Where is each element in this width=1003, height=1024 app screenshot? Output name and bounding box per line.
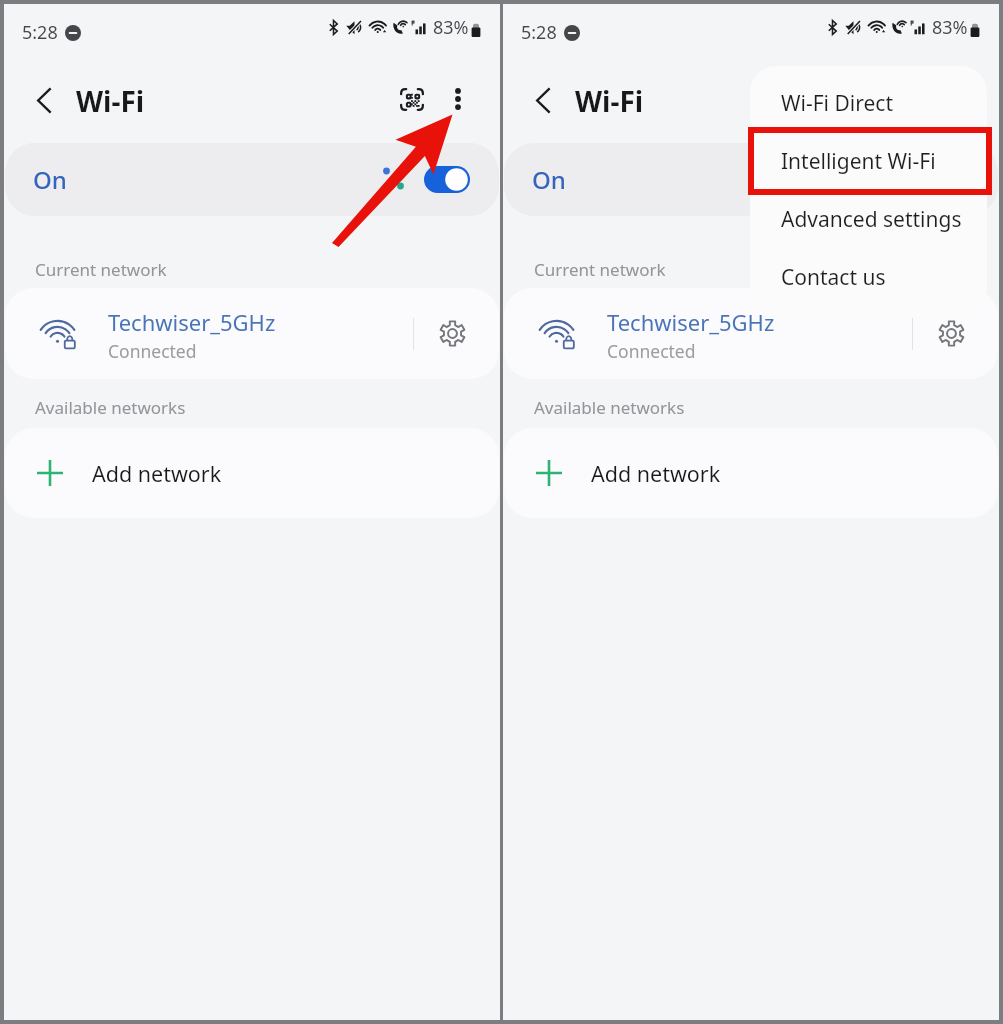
staticText: Add network: [591, 459, 721, 488]
staticText: Techwiser_5GHz: [607, 307, 775, 337]
button[interactable]: Contact us: [750, 248, 987, 306]
staticText: Advanced settings: [781, 205, 962, 234]
staticText: Available networks: [35, 396, 186, 419]
staticText: 5:28: [22, 20, 58, 45]
button[interactable]: Scan QR code: [388, 75, 436, 123]
staticText: 83%: [932, 15, 968, 40]
staticText: On: [33, 163, 67, 196]
staticText: Wi-Fi Direct: [781, 89, 893, 118]
staticText: Techwiser_5GHz: [108, 307, 276, 337]
button[interactable]: Scan QR code: [887, 75, 935, 123]
button[interactable]: More options: [434, 75, 482, 123]
button[interactable]: Add network: [5, 428, 499, 518]
staticText: Connected: [108, 339, 197, 363]
staticText: Available networks: [534, 396, 685, 419]
button[interactable]: Network settings: [904, 288, 998, 379]
button[interactable]: Intelligent Wi-Fi: [750, 132, 987, 190]
button[interactable]: Techwiser_5GHz: [504, 288, 904, 379]
button[interactable]: Wi-Fi Direct: [750, 74, 987, 132]
button[interactable]: Techwiser_5GHz: [5, 288, 405, 379]
staticText: Wi-Fi: [76, 82, 145, 120]
staticText: Connected: [607, 339, 696, 363]
staticText: Wi-Fi: [575, 82, 644, 120]
staticText: Contact us: [781, 263, 886, 292]
button[interactable]: Network settings: [405, 288, 499, 379]
button[interactable]: On: [504, 143, 998, 216]
staticText: 5:28: [521, 20, 557, 45]
staticText: Current network: [534, 258, 666, 281]
staticText: Current network: [35, 258, 167, 281]
button[interactable]: Add network: [504, 428, 998, 518]
button[interactable]: On: [5, 143, 499, 216]
staticText: Add network: [92, 459, 222, 488]
button[interactable]: Navigate up: [521, 78, 565, 122]
button[interactable]: Advanced settings: [750, 190, 987, 248]
staticText: On: [532, 163, 566, 196]
staticText: 83%: [433, 15, 469, 40]
button[interactable]: Navigate up: [22, 78, 66, 122]
staticText: Intelligent Wi-Fi: [781, 147, 936, 176]
